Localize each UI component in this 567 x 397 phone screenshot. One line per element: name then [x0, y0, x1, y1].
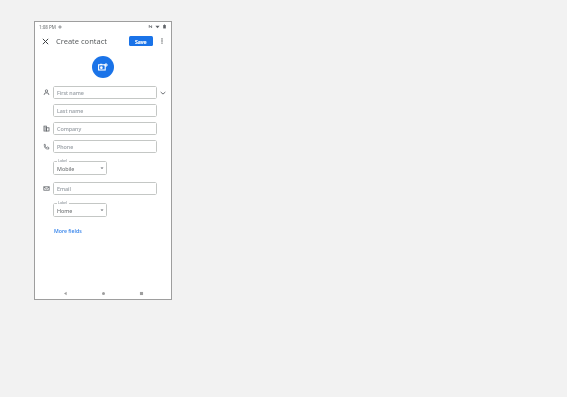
staticText: Create contact — [56, 36, 108, 46]
staticText: Company — [57, 125, 82, 132]
button[interactable]: Company — [53, 122, 157, 135]
button[interactable]: Home — [53, 203, 107, 217]
staticText: Email — [57, 185, 71, 192]
button[interactable]: Close — [39, 35, 52, 48]
staticText: 1:08 PM — [39, 24, 56, 30]
button[interactable]: Last name — [53, 104, 157, 117]
staticText: Last name — [57, 107, 84, 114]
button[interactable]: Email — [53, 182, 157, 195]
staticText: Mobile — [57, 165, 75, 172]
staticText: Label — [58, 158, 68, 163]
button[interactable]: Save — [129, 36, 153, 46]
staticText: Label — [58, 200, 68, 205]
button[interactable]: Home — [96, 286, 110, 300]
staticText: Home — [57, 207, 73, 214]
button[interactable]: Mobile — [53, 161, 107, 175]
button[interactable]: Add photo — [92, 56, 114, 78]
button[interactable]: First name — [53, 86, 157, 99]
button[interactable]: More options — [156, 35, 168, 47]
staticText: More fields — [54, 227, 82, 234]
button[interactable]: Phone — [53, 140, 157, 153]
button[interactable]: Recent apps — [134, 286, 148, 300]
button[interactable]: Expand name fields — [157, 87, 168, 98]
staticText: First name — [57, 89, 84, 96]
button[interactable]: More fields — [53, 226, 83, 235]
staticText: Save — [135, 38, 147, 45]
button[interactable]: Back — [58, 286, 72, 300]
staticText: Phone — [57, 143, 74, 150]
